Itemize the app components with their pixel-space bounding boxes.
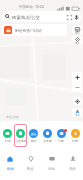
staticText: 代驾: [72, 139, 78, 143]
button[interactable]: 火车票: [40, 124, 54, 147]
button[interactable]: 打车: [1, 124, 14, 147]
button[interactable]: 路线: [0, 155, 20, 180]
staticText: 打车: [5, 139, 11, 143]
staticText: 附近: [27, 167, 34, 171]
staticText: 骑行: [31, 139, 37, 143]
button[interactable]: 附近: [20, 155, 41, 180]
button[interactable]: 搜索地点/公交: [2, 11, 81, 22]
staticText: 中国移动: [19, 5, 33, 9]
staticText: 火车票: [43, 139, 52, 143]
staticText: 门票: [58, 139, 64, 143]
staticText: 导航: [75, 114, 80, 117]
button[interactable]: Voice search: [73, 14, 79, 20]
button[interactable]: 骑行: [27, 124, 40, 147]
staticText: 路况: [75, 42, 80, 45]
button[interactable]: 我的: [62, 155, 83, 180]
staticText: 公交地铁: [15, 139, 27, 143]
staticText: 10:24: [35, 4, 44, 9]
button[interactable]: 消息: [41, 155, 62, 180]
staticText: 消息: [48, 167, 55, 171]
staticText: 中山公园: [6, 115, 19, 119]
button[interactable]: 附近有热门活动: [2, 24, 67, 36]
button[interactable]: Navigate: [72, 108, 82, 117]
button[interactable]: 公交地铁: [14, 124, 27, 147]
button[interactable]: Scan: [66, 14, 72, 20]
staticText: 搜索地点/公交: [12, 14, 40, 20]
button[interactable]: 代驾: [68, 124, 82, 147]
staticText: 路线: [7, 167, 14, 171]
staticText: 附近有热门活动: [15, 28, 42, 33]
button[interactable]: Zoom in: [72, 72, 82, 82]
button[interactable]: My location: [73, 97, 82, 106]
staticText: 图层: [75, 32, 80, 35]
button[interactable]: Zoom out: [72, 82, 82, 92]
button[interactable]: Map layers: [72, 26, 82, 35]
button[interactable]: Routes: [72, 36, 82, 45]
staticText: 我的: [69, 167, 76, 171]
button[interactable]: 门票: [54, 124, 68, 147]
